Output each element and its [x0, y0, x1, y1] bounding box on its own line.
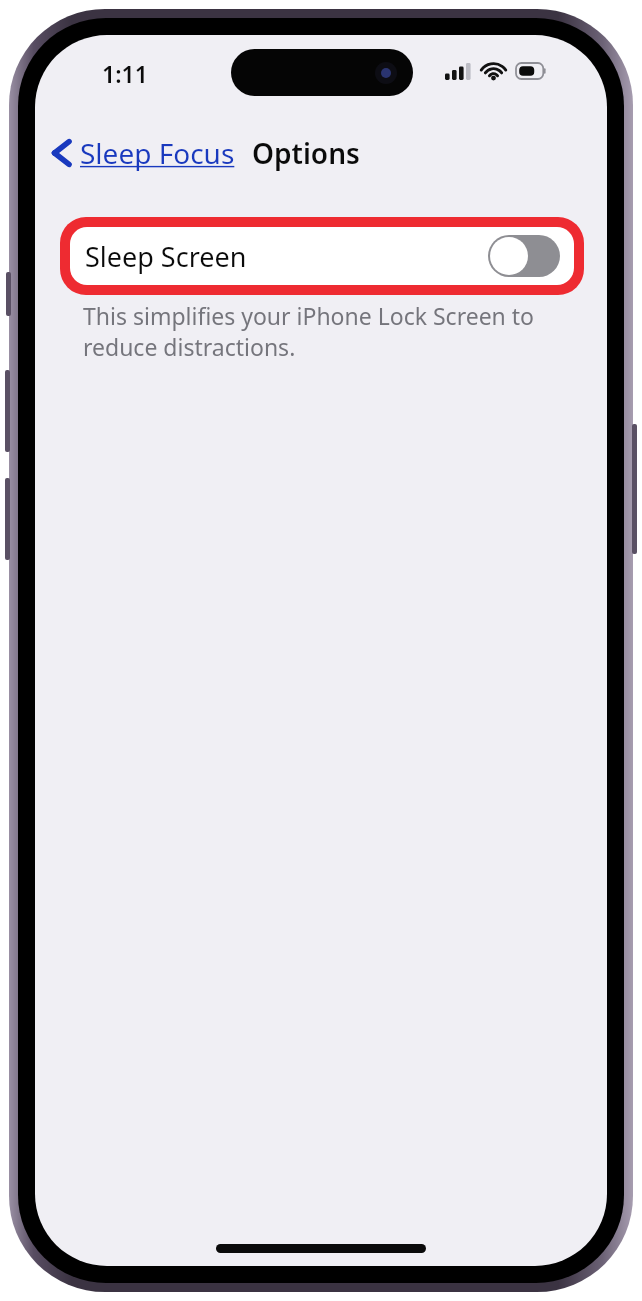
button[interactable]: Sleep Screen [70, 227, 574, 285]
staticText: This simplifies your iPhone Lock Screen … [83, 300, 535, 331]
button[interactable]: Back [45, 128, 241, 178]
staticText: Sleep Screen [85, 238, 247, 275]
staticText: 1:11 [102, 58, 148, 89]
staticText: reduce distractions. [83, 331, 296, 362]
other: Back [51, 138, 73, 168]
button[interactable]: Sleep Screen toggle, off [488, 235, 560, 277]
staticText: Options [252, 134, 360, 172]
staticText: Sleep Focus [80, 134, 235, 172]
